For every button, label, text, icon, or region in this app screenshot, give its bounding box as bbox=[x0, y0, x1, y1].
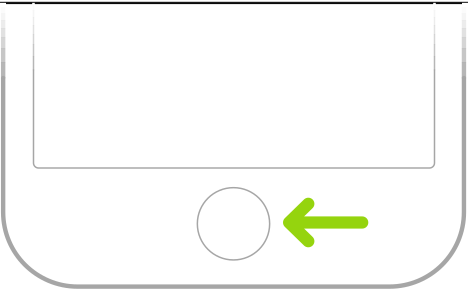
button[interactable]: Home button bbox=[0, 0, 468, 290]
